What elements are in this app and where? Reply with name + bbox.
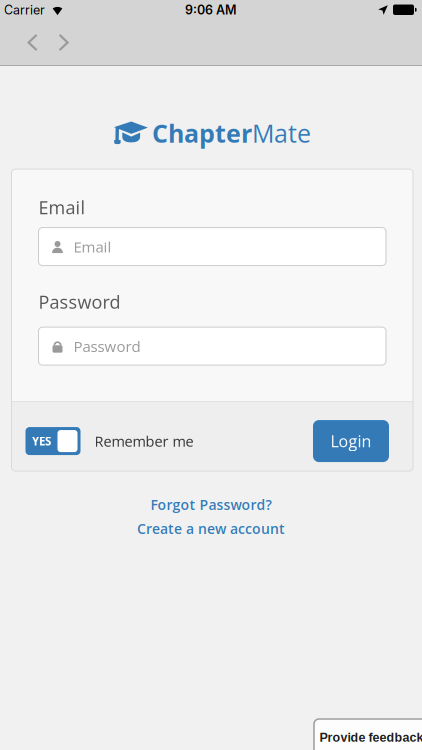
staticText: Chapter	[152, 116, 252, 150]
staticText: Provide feedback	[319, 730, 422, 744]
button[interactable]	[27, 33, 38, 51]
staticText: Password	[38, 290, 120, 314]
staticText: Mate	[252, 116, 311, 150]
staticText: Remember me	[94, 431, 193, 451]
button[interactable]: Provide feedback	[314, 719, 422, 750]
button[interactable]	[58, 33, 69, 51]
staticText: Forgot Password?	[150, 495, 271, 514]
staticText: Email	[38, 195, 85, 219]
button[interactable]: Password	[38, 327, 386, 365]
staticText: Email	[73, 236, 111, 257]
staticText: Carrier	[4, 2, 45, 17]
button[interactable]: YES	[25, 427, 80, 455]
button[interactable]: Create a new account	[137, 519, 285, 538]
staticText: Create a new account	[137, 519, 285, 538]
staticText: 9:06 AM	[185, 2, 237, 17]
staticText: YES	[32, 433, 51, 449]
button[interactable]: Forgot Password?	[150, 495, 271, 514]
staticText: Login	[330, 430, 371, 452]
staticText: Password	[73, 336, 140, 356]
button[interactable]: Login	[313, 420, 389, 462]
button[interactable]: Email	[38, 228, 386, 266]
